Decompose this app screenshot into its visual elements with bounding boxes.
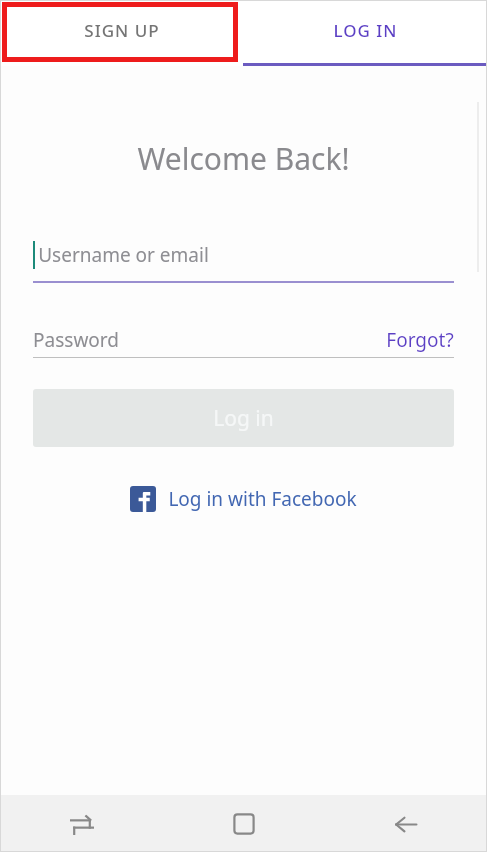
- button[interactable]: Log in with Facebook: [124, 482, 363, 516]
- staticText: Log in: [213, 404, 274, 433]
- staticText: LOG IN: [333, 19, 398, 42]
- button[interactable]: Username or email: [33, 241, 454, 281]
- staticText: Forgot?: [386, 327, 454, 353]
- button[interactable]: Password: [33, 323, 454, 357]
- staticText: Password: [33, 327, 119, 353]
- staticText: Username or email: [38, 242, 209, 268]
- staticText: SIGN UP: [84, 19, 160, 42]
- staticText: Log in with Facebook: [168, 486, 357, 512]
- button[interactable]: Recent apps: [0, 795, 163, 852]
- button[interactable]: Back: [325, 795, 487, 852]
- button[interactable]: LOG IN: [243, 0, 487, 66]
- staticText: Welcome Back!: [137, 138, 350, 179]
- button[interactable]: Home: [163, 795, 325, 852]
- button[interactable]: SIGN UP: [0, 0, 243, 66]
- button[interactable]: Forgot?: [386, 327, 454, 353]
